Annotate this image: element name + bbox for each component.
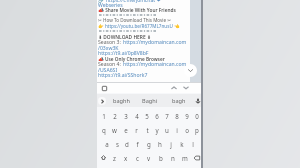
staticText: 9 [185,112,189,120]
staticText: w [112,126,117,134]
staticText: https://mydomaincan.com [123,61,187,68]
staticText: https://t9.ai/SShork7 [98,72,148,79]
staticText: 3 [124,112,128,120]
staticText: s [116,140,119,148]
staticText: https://t9.ai/0p8V8bF [98,50,149,57]
button[interactable]: f [132,137,143,151]
button[interactable]: Attach [101,85,108,92]
staticText: c [136,154,139,162]
button[interactable]: More suggestions [97,94,107,107]
staticText: ✂ How To Download This Movie ✂ [98,17,172,23]
button[interactable]: x [120,151,131,164]
button[interactable]: k [176,137,187,151]
button[interactable]: u [162,123,172,137]
button[interactable]: baghh [107,94,135,107]
button[interactable]: e [120,123,131,137]
button[interactable]: b [155,151,167,164]
button[interactable]: Scroll to bottom [184,64,197,77]
staticText: 📣 Share Movie With Your Friends [98,7,176,13]
staticText: p [195,126,199,134]
button[interactable]: Voice input [193,94,203,107]
staticText: x [124,154,128,162]
staticText: 7 [165,112,169,120]
button[interactable]: Shift [97,151,109,164]
button[interactable]: 0 [192,109,202,123]
staticText: 0 [195,112,199,120]
staticText: ⬇ DOWNLOAD HERE ⬇ [98,34,151,41]
button[interactable]: q [98,123,109,137]
staticText: f [136,140,139,148]
button[interactable]: h [154,137,165,151]
staticText: i [176,126,178,134]
staticText: /03xw3K [98,45,119,52]
button[interactable]: z [109,151,120,164]
button[interactable]: y [152,123,162,137]
staticText: l [192,140,194,148]
staticText: baghh [113,97,130,105]
staticText: y [155,126,159,134]
button[interactable]: s [112,137,122,151]
staticText: k [180,140,184,148]
staticText: Season 4: [98,61,123,68]
staticText: o [185,126,189,134]
staticText: 🔗 https://t.me/joinchat ❤ [98,0,161,4]
button[interactable]: a [102,137,112,151]
button[interactable]: 3 [120,109,131,123]
staticText: 📣 Use Only Chrome Browser [98,56,165,62]
button[interactable]: Previous result [169,83,178,92]
button[interactable]: t [142,123,152,137]
button[interactable]: g [143,137,154,151]
staticText: z [113,154,116,162]
button[interactable]: i [172,123,182,137]
staticText: 8 [175,112,179,120]
button[interactable]: 9 [182,109,192,123]
button[interactable]: v [143,151,155,164]
staticText: j [170,140,172,148]
staticText: a [105,140,109,148]
button[interactable]: 2 [109,109,120,123]
button[interactable]: l [187,137,198,151]
button[interactable]: c [131,151,143,164]
staticText: q [102,126,106,134]
staticText: 👉 https://youtu.be/R677ML7nusU 👈 [98,23,180,29]
staticText: h [158,140,162,148]
staticText: v [147,154,151,162]
staticText: 4 [135,112,139,120]
button[interactable]: 7 [162,109,172,123]
staticText: 1 [102,112,106,120]
button[interactable]: 6 [152,109,162,123]
button[interactable]: Backspace [191,151,203,164]
button[interactable]: Next result [181,83,190,92]
staticText: Webseries [98,2,123,9]
staticText: bagh [172,97,186,105]
button[interactable]: w [109,123,120,137]
button[interactable]: m [179,151,191,164]
staticText: m [182,154,188,162]
staticText: t [146,126,149,134]
staticText: u [165,126,169,134]
staticText: n [171,154,175,162]
button[interactable]: 8 [172,109,182,123]
staticText: 2 [113,112,117,120]
staticText: b [159,154,163,162]
button[interactable]: 5 [142,109,152,123]
staticText: Baghi [142,97,158,105]
staticText: r [135,126,138,134]
button[interactable]: j [165,137,176,151]
staticText: /USA6SI [98,67,118,74]
staticText: g [147,140,151,148]
staticText: e [124,126,128,134]
button[interactable]: 4 [131,109,142,123]
button[interactable]: 1 [98,109,109,123]
button[interactable]: o [182,123,192,137]
staticText: Season 3: [98,39,123,46]
button[interactable]: Baghi [135,94,164,107]
staticText: 6 [155,112,159,120]
staticText: https://mydomaincan.com [123,39,187,46]
staticText: d [125,140,129,148]
button[interactable]: n [167,151,179,164]
button[interactable]: r [131,123,142,137]
button[interactable]: p [192,123,202,137]
button[interactable]: bagh [164,94,193,107]
button[interactable]: d [122,137,132,151]
